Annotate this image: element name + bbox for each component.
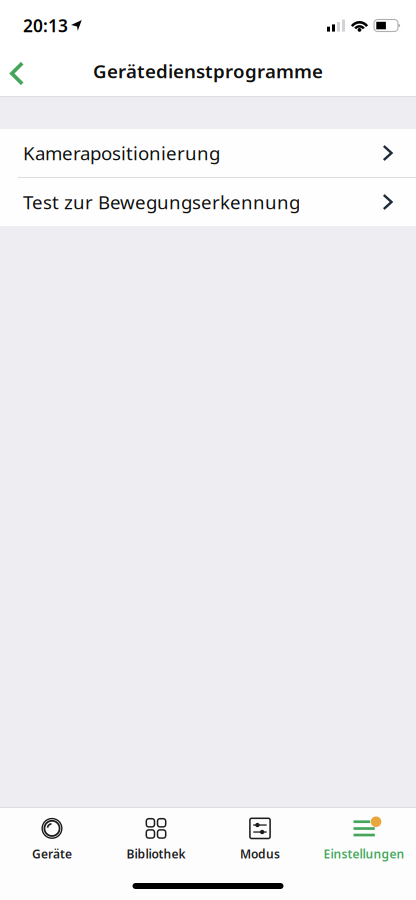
button[interactable]: Zurück xyxy=(0,49,39,97)
button[interactable]: Kamerapositionierung xyxy=(0,129,416,177)
button[interactable]: Test zur Bewegungserkennung xyxy=(0,178,416,226)
staticText: Geräte xyxy=(32,846,72,862)
staticText: Kamerapositionierung xyxy=(23,141,220,165)
button[interactable]: Modus xyxy=(208,808,312,870)
staticText: Modus xyxy=(240,846,280,862)
staticText: Test zur Bewegungserkennung xyxy=(23,190,300,214)
staticText: Gerätedienstprogramme xyxy=(93,59,323,83)
button[interactable]: Geräte xyxy=(0,808,104,870)
staticText: Einstellungen xyxy=(323,846,404,862)
staticText: 20:13 xyxy=(23,14,68,37)
button[interactable]: Bibliothek xyxy=(104,808,208,870)
button[interactable]: Einstellungen xyxy=(312,808,416,870)
staticText: Bibliothek xyxy=(126,846,185,862)
